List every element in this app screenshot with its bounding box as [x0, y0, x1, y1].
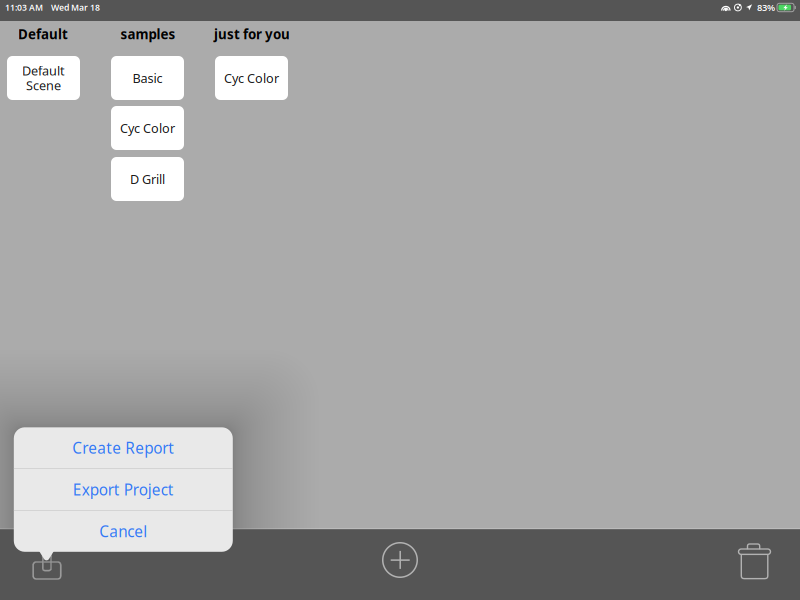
staticText: Wed Mar 18 — [51, 2, 100, 13]
staticText: 83% — [757, 1, 775, 14]
staticText: just for you — [214, 25, 290, 43]
staticText: Basic — [132, 69, 162, 87]
staticText: Cyc Color — [224, 69, 279, 87]
button[interactable]: Cyc Color — [111, 106, 184, 150]
staticText: Default — [18, 25, 68, 43]
staticText: Create Report — [72, 437, 174, 458]
button[interactable]: Delete — [737, 541, 771, 579]
button[interactable]: Share — [32, 552, 62, 582]
staticText: D Grill — [130, 170, 165, 188]
button[interactable]: Export Project — [14, 469, 233, 510]
staticText: Export Project — [73, 479, 174, 500]
button[interactable]: Cyc Color — [215, 56, 288, 100]
button[interactable]: Create Report — [14, 427, 233, 468]
button[interactable]: Add — [382, 542, 418, 578]
button[interactable]: D Grill — [111, 157, 184, 201]
staticText: samples — [120, 25, 175, 43]
staticText: 11:03 AM — [5, 2, 43, 13]
staticText: Cancel — [99, 521, 147, 542]
button[interactable]: Default — [7, 56, 80, 100]
button[interactable]: Basic — [111, 56, 184, 100]
staticText: Default — [22, 62, 65, 79]
staticText: Cyc Color — [120, 119, 175, 137]
staticText: Scene — [26, 77, 61, 94]
button[interactable]: Cancel — [14, 511, 233, 552]
